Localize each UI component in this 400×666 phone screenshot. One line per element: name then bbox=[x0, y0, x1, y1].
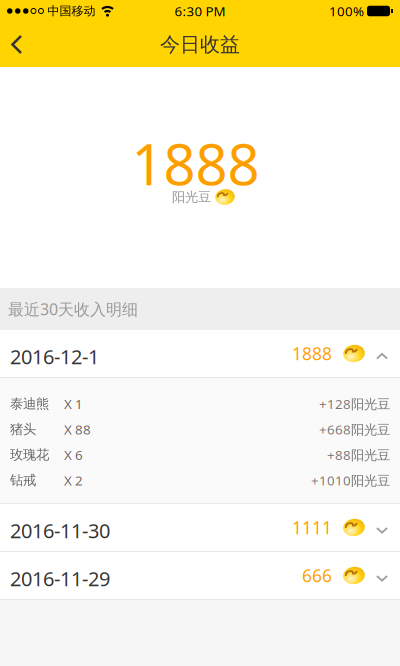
staticText: X 1 bbox=[64, 395, 83, 413]
button[interactable]: 2016-12-1 bbox=[0, 330, 400, 377]
staticText: 猪头 bbox=[10, 421, 36, 437]
staticText: 2016-12-1 bbox=[10, 343, 99, 370]
staticText: X 88 bbox=[64, 420, 91, 438]
staticText: X 6 bbox=[64, 446, 83, 464]
staticText: 钻戒 bbox=[10, 472, 36, 488]
staticText: +668阳光豆 bbox=[319, 420, 390, 438]
button[interactable]: 2016-11-29 bbox=[0, 552, 400, 599]
staticText: 阳光豆 bbox=[172, 189, 211, 205]
staticText: +1010阳光豆 bbox=[311, 471, 390, 489]
staticText: 今日收益 bbox=[160, 32, 240, 57]
staticText: 100% bbox=[329, 2, 364, 20]
staticText: +88阳光豆 bbox=[327, 446, 390, 464]
staticText: 最近30天收入明细 bbox=[8, 298, 138, 320]
staticText: 1111 bbox=[292, 516, 332, 539]
staticText: 2016-11-30 bbox=[10, 517, 110, 544]
staticText: 玫瑰花 bbox=[10, 447, 49, 463]
staticText: 6:30 PM bbox=[174, 2, 225, 20]
staticText: +128阳光豆 bbox=[319, 395, 390, 413]
staticText: 中国移动 bbox=[47, 4, 95, 18]
button[interactable]: Back bbox=[0, 22, 22, 67]
staticText: 1888 bbox=[131, 126, 259, 201]
staticText: 666 bbox=[302, 564, 332, 587]
staticText: X 2 bbox=[64, 471, 83, 489]
button[interactable]: 2016-11-30 bbox=[0, 504, 400, 551]
staticText: 1888 bbox=[292, 342, 332, 365]
staticText: 泰迪熊 bbox=[10, 396, 49, 412]
staticText: 2016-11-29 bbox=[10, 565, 110, 592]
